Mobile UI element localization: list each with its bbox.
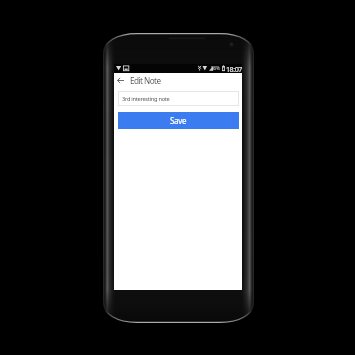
button[interactable]: Back [114, 73, 127, 87]
staticText: 86% [211, 65, 220, 72]
button[interactable]: 3rd interesting note [118, 91, 239, 106]
button[interactable]: Save [118, 112, 239, 129]
staticText: Save [170, 115, 187, 126]
staticText: 18:07 [226, 64, 242, 73]
staticText: 3rd interesting note [122, 95, 170, 103]
staticText: Edit Note [130, 75, 161, 86]
